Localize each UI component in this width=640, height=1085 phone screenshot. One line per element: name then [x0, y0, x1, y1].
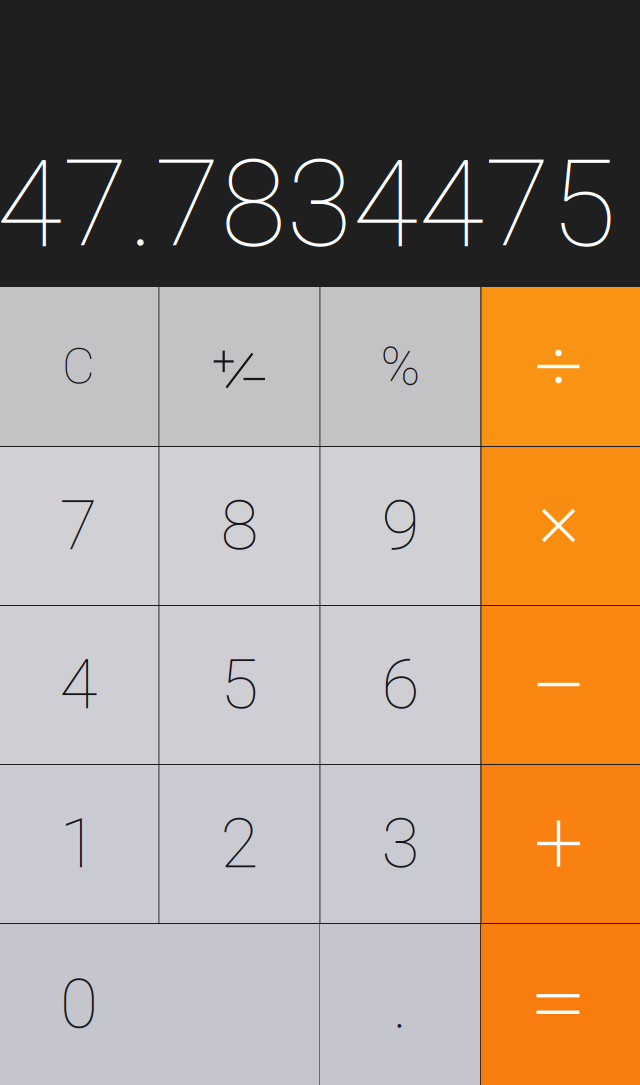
staticText: 3	[381, 803, 419, 884]
staticText: %	[380, 335, 420, 398]
button[interactable]: 8	[159, 446, 319, 605]
staticText: .	[392, 963, 407, 1045]
staticText: 0	[60, 963, 98, 1045]
button[interactable]: Clear	[0, 287, 158, 446]
staticText: 2	[220, 803, 258, 884]
staticText: 1	[59, 803, 97, 884]
staticText: 4	[59, 644, 97, 725]
button[interactable]: Plus minus	[159, 287, 319, 446]
staticText: 5	[220, 644, 258, 725]
button[interactable]: 5	[159, 605, 319, 764]
button[interactable]: Multiply	[481, 446, 640, 605]
button[interactable]: 2	[159, 764, 319, 923]
button[interactable]: 1	[0, 764, 158, 923]
button[interactable]: Plus	[481, 764, 640, 923]
button[interactable]: Equals	[481, 923, 640, 1085]
button[interactable]: 3	[320, 764, 480, 923]
button[interactable]: 0	[0, 923, 319, 1085]
button[interactable]: 7	[0, 446, 158, 605]
button[interactable]: 4	[0, 605, 158, 764]
staticText: 7	[59, 485, 97, 566]
button[interactable]: 6	[320, 605, 480, 764]
staticText: 8	[220, 485, 258, 566]
button[interactable]: Decimal point	[320, 923, 480, 1085]
button[interactable]: Divide	[481, 287, 640, 446]
staticText: 6	[381, 644, 419, 725]
staticText: 47.7834475	[0, 134, 616, 275]
button[interactable]: Minus	[481, 605, 640, 764]
staticText: C	[62, 337, 95, 396]
button[interactable]: 9	[320, 446, 480, 605]
staticText: 9	[381, 485, 419, 566]
button[interactable]: Percent	[320, 287, 480, 446]
